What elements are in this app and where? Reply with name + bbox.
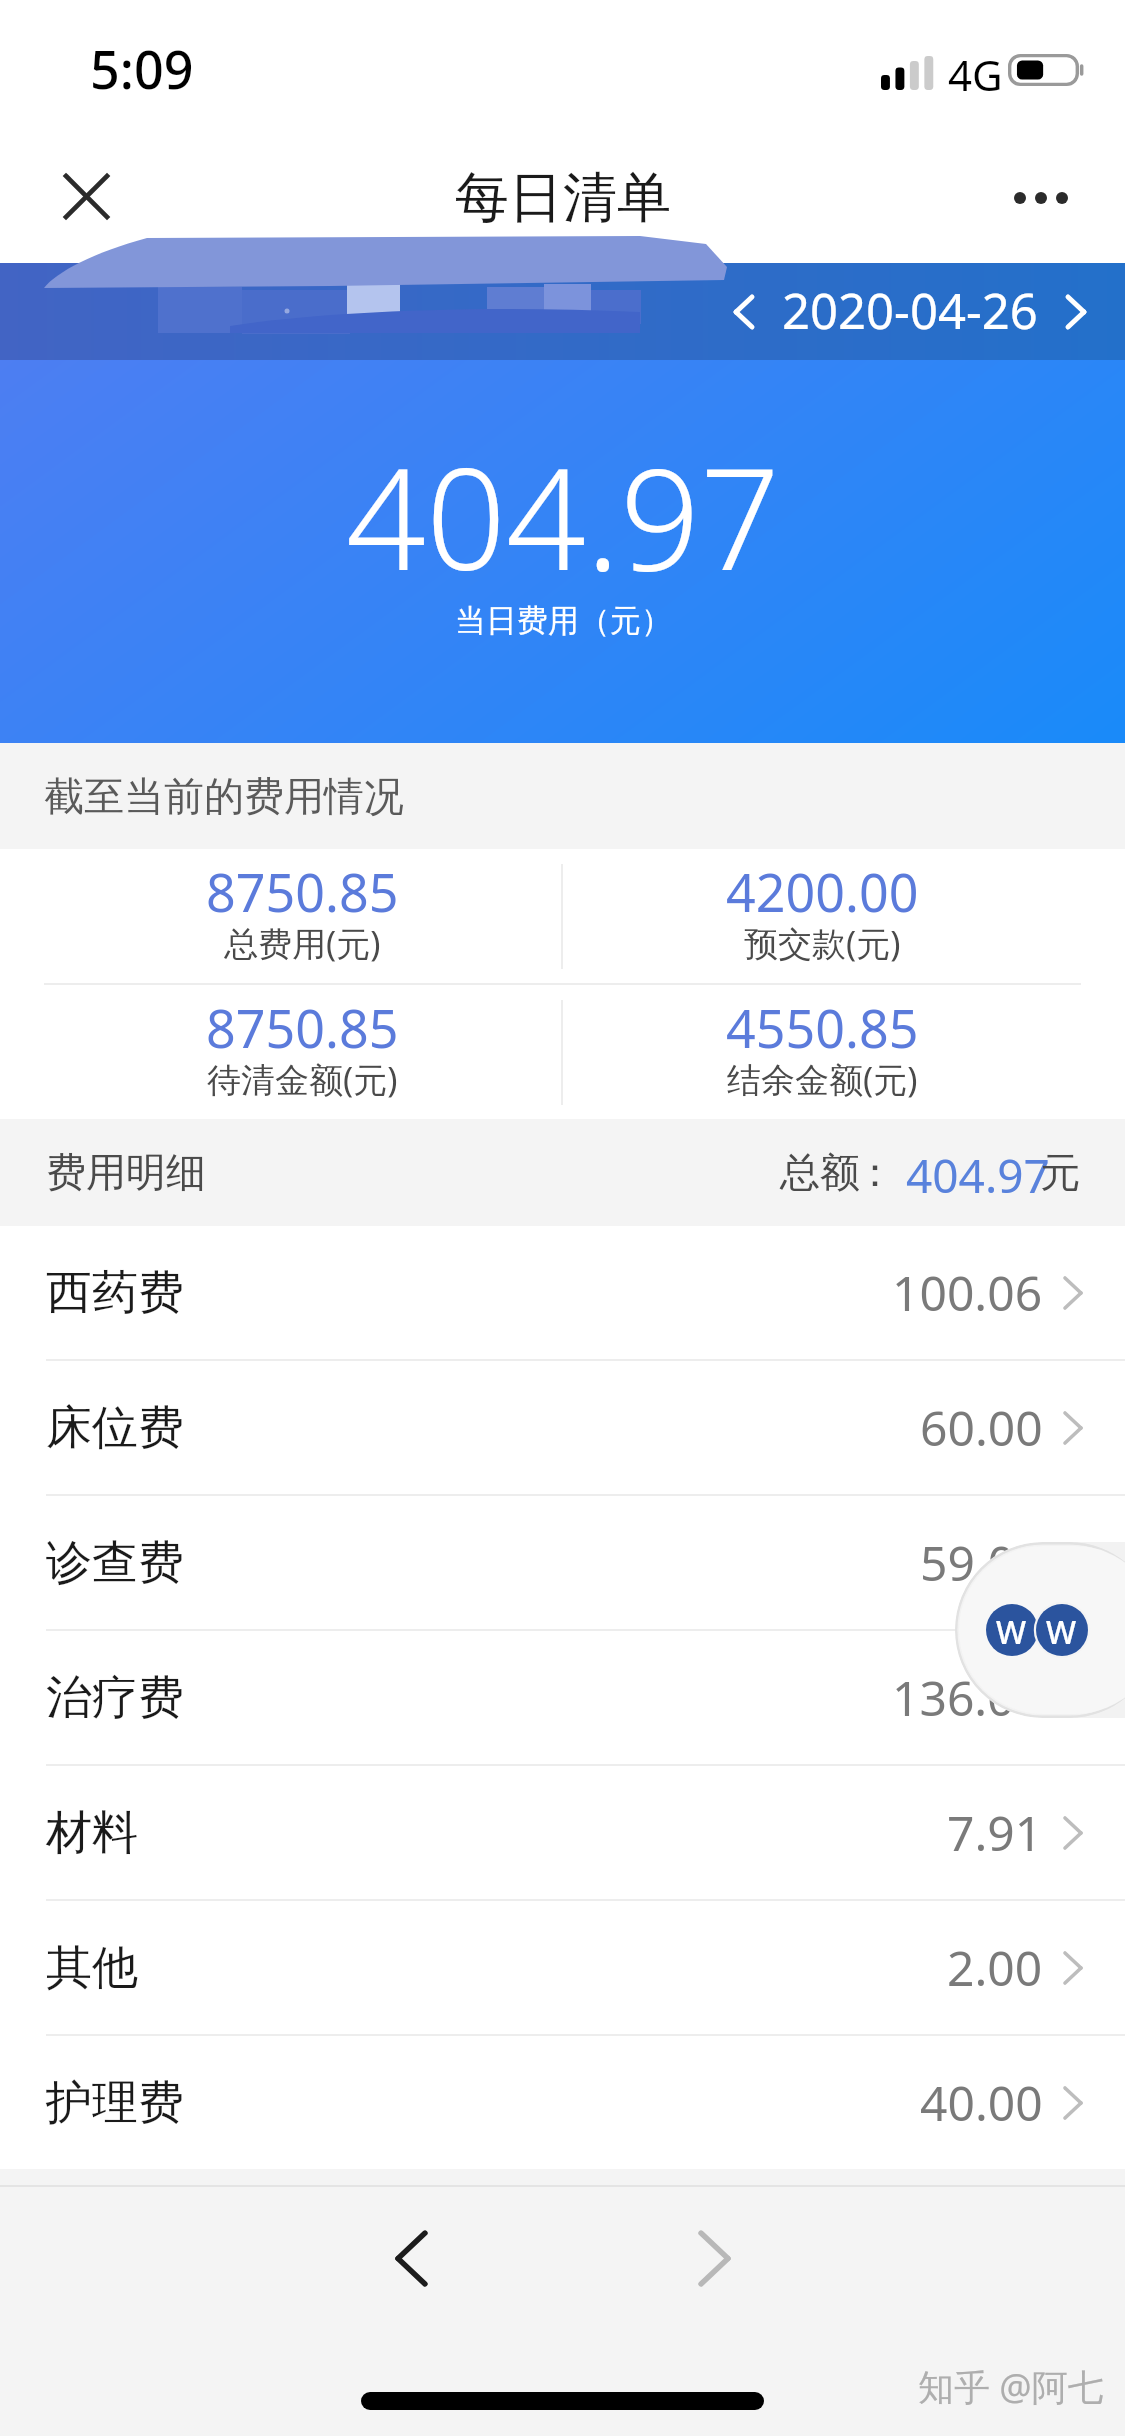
staticText: ：: [855, 1147, 895, 1197]
staticText: 59.00: [920, 1530, 1043, 1595]
staticText: 7.91: [947, 1800, 1043, 1865]
staticText: 2020-04-26: [782, 277, 1038, 344]
staticText: 总额: [780, 1147, 860, 1197]
button[interactable]: 护理费: [0, 2036, 1125, 2169]
staticText: 40.00: [920, 2070, 1043, 2135]
staticText: 元: [1040, 1147, 1080, 1197]
staticText: 404.97: [346, 420, 780, 611]
staticText: 材料: [46, 1804, 138, 1862]
button[interactable]: Forward: [654, 2198, 774, 2318]
staticText: 诊查费: [46, 1534, 184, 1592]
staticText: 护理费: [46, 2074, 184, 2132]
staticText: 床位费: [46, 1399, 184, 1457]
staticText: 每日清单: [455, 164, 671, 232]
button[interactable]: Floating assistant: [955, 1542, 1125, 1718]
staticText: 4G: [948, 46, 1003, 103]
staticText: 当日费用（元）: [455, 601, 672, 640]
staticText: 404.97: [906, 1144, 1050, 1207]
staticText: 西药费: [46, 1264, 184, 1322]
button[interactable]: 4550.85: [563, 985, 1081, 1109]
staticText: 2.00: [947, 1935, 1043, 2000]
staticText: W: [996, 1610, 1027, 1654]
button[interactable]: 其他: [0, 1901, 1125, 2034]
button[interactable]: 材料: [0, 1766, 1125, 1899]
staticText: 治疗费: [46, 1669, 184, 1727]
button[interactable]: 治疗费: [0, 1631, 1125, 1764]
staticText: 5:09: [90, 33, 194, 104]
button[interactable]: 8750.85: [44, 849, 561, 973]
staticText: 4550.85: [726, 992, 919, 1063]
button[interactable]: 诊查费: [0, 1496, 1125, 1629]
staticText: 其他: [46, 1939, 138, 1997]
staticText: 预交款(元): [744, 920, 901, 966]
staticText: W: [1046, 1610, 1077, 1654]
button[interactable]: 2020-04-26: [736, 278, 1084, 345]
staticText: 截至当前的费用情况: [44, 771, 404, 821]
staticText: 费用明细: [46, 1147, 206, 1197]
staticText: 100.06: [892, 1260, 1043, 1325]
staticText: 8750.85: [206, 992, 399, 1063]
staticText: 60.00: [920, 1395, 1043, 1460]
staticText: 总费用(元): [224, 920, 381, 966]
button[interactable]: 8750.85: [44, 985, 561, 1109]
button[interactable]: 西药费: [0, 1226, 1125, 1359]
button[interactable]: Close: [40, 146, 132, 238]
staticText: 结余金额(元): [727, 1056, 918, 1102]
staticText: 8750.85: [206, 856, 399, 927]
button[interactable]: 床位费: [0, 1361, 1125, 1494]
button[interactable]: More options: [986, 146, 1096, 238]
staticText: 待清金额(元): [207, 1056, 398, 1102]
button[interactable]: Back: [351, 2198, 471, 2318]
staticText: 136.00: [892, 1665, 1043, 1730]
staticText: 知乎 @阿七: [918, 2362, 1104, 2411]
button[interactable]: 4200.00: [563, 849, 1081, 973]
staticText: 4200.00: [726, 856, 919, 927]
